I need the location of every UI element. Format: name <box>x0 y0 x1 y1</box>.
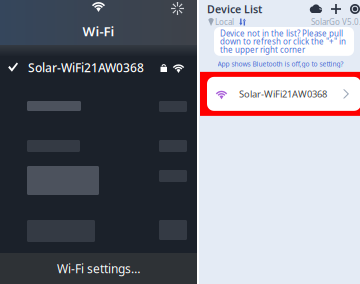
button[interactable]: Add device <box>331 4 341 14</box>
button[interactable]: Solar-WiFi21AW0368 <box>0 56 197 79</box>
staticText: Device List <box>207 2 262 16</box>
button[interactable]: App shows Bluetooth is off,go to setting… <box>200 59 360 69</box>
button[interactable]: Scan <box>350 4 360 14</box>
button[interactable]: Local <box>208 17 246 27</box>
staticText: Local <box>215 17 234 27</box>
staticText: Wi-Fi settings… <box>57 260 140 276</box>
staticText: SolarGo V5.0. <box>311 17 360 27</box>
button[interactable]: Cloud <box>310 5 322 13</box>
staticText: Solar-WiFi21AW0368 <box>28 59 144 75</box>
staticText: Solar-WiFi21AW0368 <box>239 88 327 100</box>
button[interactable]: Solar-WiFi21AW0368 <box>200 72 360 116</box>
staticText: App shows Bluetooth is off,go to setting… <box>217 59 343 68</box>
staticText: Wi-Fi <box>82 22 114 40</box>
button[interactable]: Wi-Fi settings… <box>0 253 197 284</box>
staticText: Device not in the list? Please pull down… <box>220 28 346 55</box>
